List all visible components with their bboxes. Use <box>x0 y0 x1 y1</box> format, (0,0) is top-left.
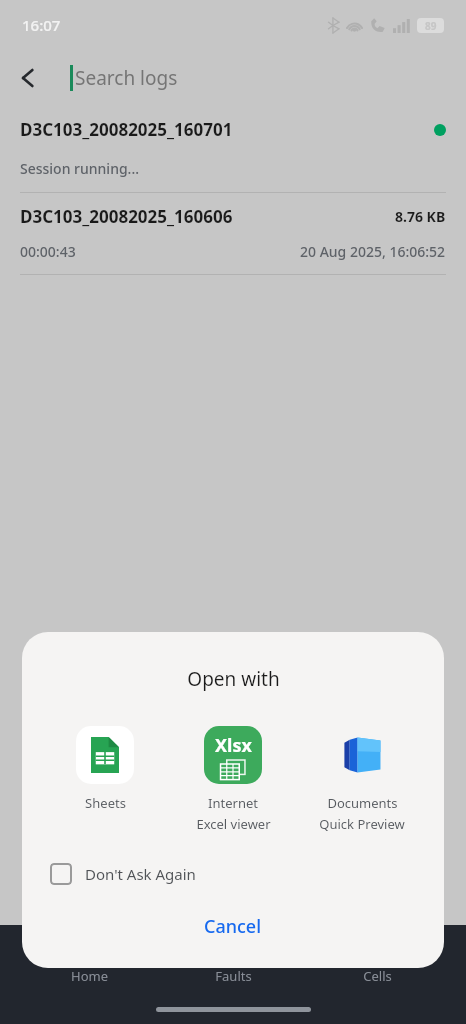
button[interactable]: D3C103_20082025_160701 <box>0 118 466 192</box>
staticText: 00:00:43 <box>20 242 76 261</box>
button[interactable]: Sheets <box>45 724 165 814</box>
staticText: Open with <box>187 666 280 692</box>
button[interactable]: Xlsx <box>173 724 293 835</box>
staticText: D3C103_20082025_160701 <box>20 118 233 141</box>
button[interactable]: Cancel <box>22 905 444 948</box>
staticText: Xlsx <box>215 733 252 758</box>
staticText: 16:07 <box>22 15 61 35</box>
staticText: Quick Preview <box>319 815 405 833</box>
staticText: Don't Ask Again <box>85 864 196 884</box>
staticText: Sheets <box>85 794 126 812</box>
staticText: 8.76 KB <box>395 207 446 226</box>
button[interactable]: Back <box>0 50 56 106</box>
button[interactable]: Don't Ask Again <box>22 857 444 891</box>
staticText: D3C103_20082025_160606 <box>20 205 233 228</box>
button[interactable]: Documents <box>302 724 422 835</box>
staticText: Excel viewer <box>196 815 271 833</box>
staticText: Cancel <box>204 914 262 939</box>
staticText: Internet <box>208 794 258 812</box>
button[interactable]: Home <box>34 963 144 989</box>
button[interactable]: D3C103_20082025_160606 <box>0 193 466 274</box>
staticText: Cells <box>363 967 392 985</box>
button[interactable]: Faults <box>178 963 288 989</box>
staticText: Search logs <box>75 65 178 91</box>
staticText: Faults <box>215 967 252 985</box>
staticText: Session running... <box>20 159 140 178</box>
button[interactable]: Cells <box>322 963 432 989</box>
staticText: Home <box>71 967 108 985</box>
staticText: Documents <box>327 794 398 812</box>
staticText: 20 Aug 2025, 16:06:52 <box>300 242 446 261</box>
staticText: 89 <box>425 19 437 33</box>
